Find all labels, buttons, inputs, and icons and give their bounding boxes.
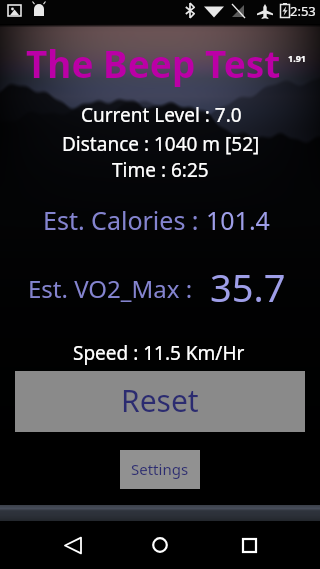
staticText: 1.91: [288, 52, 306, 64]
staticText: Distance : 1040 m [52]: [62, 131, 260, 157]
staticText: Est. Calories :: [43, 203, 206, 237]
staticText: 35.7: [210, 261, 286, 313]
staticText: The Beep Test: [26, 38, 281, 88]
button[interactable]: Settings: [120, 450, 200, 489]
button[interactable]: Recent apps: [225, 521, 273, 569]
staticText: Est. VO2_Max :: [28, 272, 193, 305]
staticText: Reset: [121, 380, 199, 421]
button[interactable]: Back: [48, 521, 96, 569]
staticText: Time : 6:25: [112, 157, 209, 183]
staticText: Speed : 11.5 Km/Hr: [73, 340, 245, 366]
staticText: Settings: [131, 459, 189, 479]
staticText: 101.4: [206, 203, 270, 237]
staticText: 2:53: [290, 2, 316, 20]
button[interactable]: Reset: [15, 371, 305, 432]
button[interactable]: Home: [136, 521, 184, 569]
staticText: Current Level : 7.0: [81, 102, 242, 128]
